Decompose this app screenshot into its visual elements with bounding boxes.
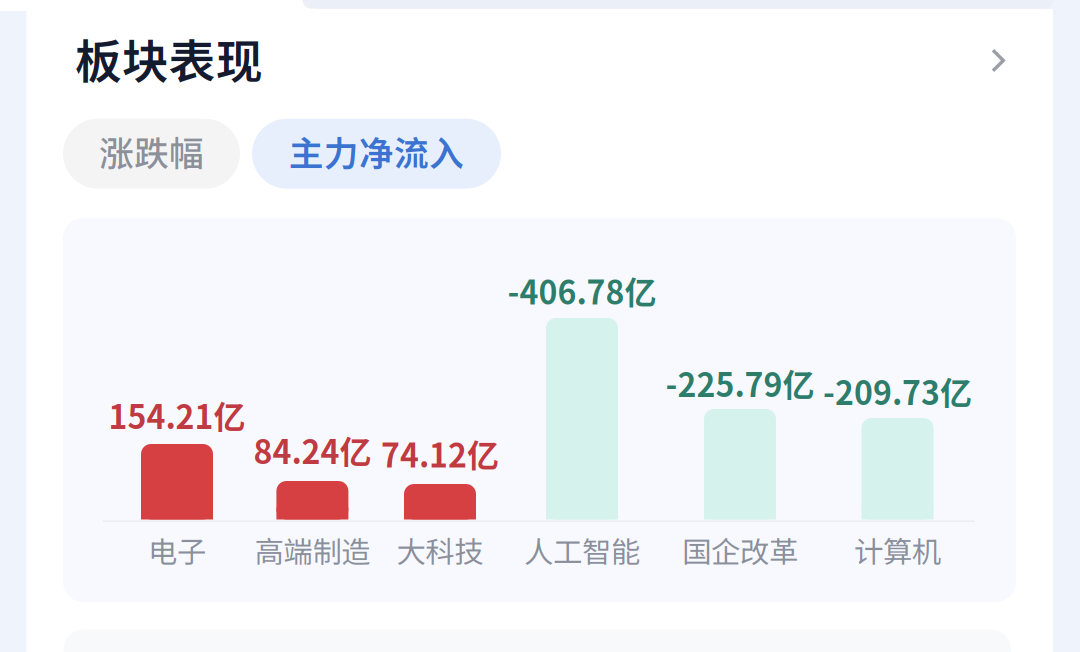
staticText: 大科技 — [396, 529, 483, 571]
staticText: 涨跌幅 — [99, 126, 204, 176]
button[interactable]: 涨跌幅 — [63, 119, 240, 189]
button[interactable]: 主力净流入 — [252, 119, 501, 189]
staticText: 板块表现 — [75, 25, 263, 92]
staticText: 主力净流入 — [289, 126, 464, 176]
staticText: -225.79亿 — [665, 360, 814, 406]
staticText: 154.21亿 — [108, 392, 245, 438]
staticText: 电子 — [148, 529, 206, 571]
staticText: 74.12亿 — [381, 430, 499, 477]
staticText: 计算机 — [854, 529, 941, 571]
staticText: 人工智能 — [524, 529, 640, 571]
staticText: 84.24亿 — [253, 427, 371, 473]
staticText: -209.73亿 — [823, 368, 972, 414]
staticText: -406.78亿 — [507, 267, 656, 314]
staticText: 高端制造 — [254, 529, 370, 571]
staticText: 国企改革 — [682, 529, 798, 571]
button[interactable]: 板块表现 — [75, 6, 1005, 110]
